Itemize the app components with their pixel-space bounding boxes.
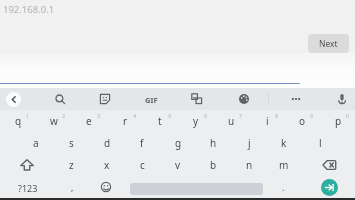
staticText: g [175, 136, 182, 150]
staticText: i [266, 114, 269, 128]
button[interactable]: c [124, 154, 160, 176]
button[interactable]: w [36, 110, 72, 132]
button[interactable]: d [89, 132, 125, 154]
button[interactable]: Go [321, 179, 338, 196]
staticText: 4 [133, 112, 137, 119]
button[interactable]: Translate [187, 89, 207, 109]
button[interactable]: y [178, 110, 214, 132]
staticText: w [50, 114, 58, 128]
button[interactable]: v [160, 154, 196, 176]
staticText: . [282, 181, 285, 193]
staticText: o [299, 114, 306, 128]
staticText: 3 [97, 112, 101, 119]
staticText: , [71, 181, 74, 193]
button[interactable]: e [71, 110, 107, 132]
staticText: 5 [168, 112, 172, 119]
staticText: Next [319, 38, 338, 50]
button[interactable]: Backspace [302, 154, 355, 176]
button[interactable]: n [231, 154, 267, 176]
staticText: ?123 [18, 182, 38, 194]
button[interactable]: Stickers [95, 89, 115, 109]
staticText: 192.168.0.1 [3, 3, 55, 16]
staticText: m [279, 158, 289, 172]
button[interactable]: Emoji [90, 176, 122, 198]
staticText: 0 [346, 112, 350, 119]
staticText: 2 [62, 112, 66, 119]
button[interactable]: j [231, 132, 267, 154]
button[interactable]: i [249, 110, 285, 132]
staticText: GIF [145, 95, 158, 105]
staticText: t [158, 114, 162, 128]
staticText: 9 [310, 112, 314, 119]
button[interactable]: h [195, 132, 231, 154]
button[interactable]: b [195, 154, 231, 176]
staticText: f [140, 136, 144, 150]
button[interactable]: Shift [0, 154, 53, 176]
button[interactable]: z [53, 154, 89, 176]
button[interactable]: r [107, 110, 143, 132]
button[interactable]: x [89, 154, 125, 176]
staticText: a [33, 136, 39, 150]
button[interactable]: GIF [141, 90, 161, 110]
staticText: n [246, 158, 253, 172]
button[interactable]: t [142, 110, 178, 132]
button[interactable]: s [53, 132, 89, 154]
staticText: j [248, 136, 251, 150]
staticText: q [15, 114, 22, 128]
staticText: l [319, 136, 322, 150]
button[interactable]: Next [308, 34, 349, 53]
button[interactable]: f [124, 132, 160, 154]
button[interactable]: g [160, 132, 196, 154]
staticText: u [228, 114, 235, 128]
button[interactable]: l [302, 132, 338, 154]
staticText: p [335, 114, 342, 128]
staticText: z [69, 158, 74, 172]
staticText: h [210, 136, 217, 150]
staticText: 8 [275, 112, 279, 119]
button[interactable]: , [54, 176, 90, 198]
button[interactable]: More options [286, 89, 306, 109]
staticText: x [104, 158, 110, 172]
button[interactable]: m [266, 154, 302, 176]
staticText: e [86, 114, 92, 128]
button[interactable]: ?123 [1, 177, 54, 199]
button[interactable]: o [284, 110, 320, 132]
button[interactable]: . [265, 176, 301, 198]
staticText: 7 [239, 112, 243, 119]
staticText: d [104, 136, 111, 150]
staticText: y [193, 114, 199, 128]
button[interactable]: Voice input [332, 89, 352, 109]
staticText: v [175, 158, 181, 172]
button[interactable]: k [266, 132, 302, 154]
button[interactable]: q [0, 110, 36, 132]
staticText: b [210, 158, 217, 172]
staticText: c [140, 158, 145, 172]
staticText: 6 [204, 112, 208, 119]
button[interactable]: Search [50, 89, 70, 109]
button[interactable]: u [213, 110, 249, 132]
button[interactable]: Theme [234, 89, 254, 109]
staticText: s [69, 136, 74, 150]
staticText: k [281, 136, 287, 150]
button[interactable]: a [18, 132, 54, 154]
staticText: 1 [26, 112, 30, 119]
staticText: r [123, 114, 128, 128]
button[interactable]: p [320, 110, 355, 132]
button[interactable]: Back [6, 92, 21, 107]
